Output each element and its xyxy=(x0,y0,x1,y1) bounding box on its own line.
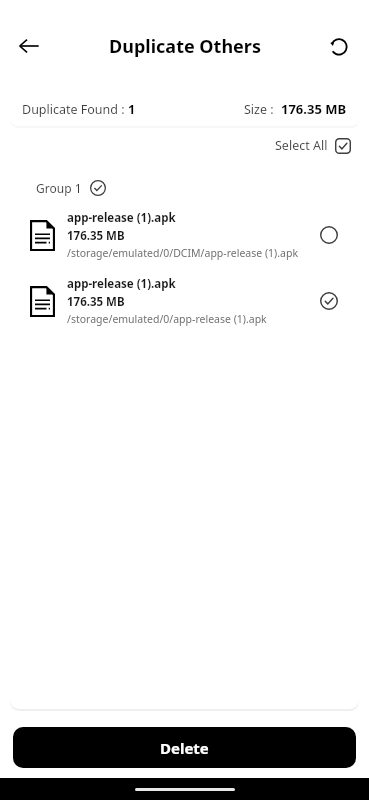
staticText: 176.35 MB xyxy=(67,228,125,244)
button[interactable]: Back xyxy=(6,23,52,69)
staticText: 176.35 MB xyxy=(281,100,347,118)
staticText: Duplicate Others xyxy=(109,34,261,59)
staticText: /storage/emulated/0/app-release (1).apk xyxy=(67,312,267,326)
staticText: app-release (1).apk xyxy=(67,276,176,292)
button[interactable]: Refresh xyxy=(317,24,361,68)
button[interactable]: Not selected xyxy=(315,221,343,249)
staticText: Select All xyxy=(275,137,328,154)
button[interactable]: Delete xyxy=(13,727,356,768)
button[interactable]: Select All xyxy=(271,133,355,158)
staticText: 1 xyxy=(128,101,136,118)
button[interactable]: app-release (1).apk xyxy=(10,202,359,268)
staticText: /storage/emulated/0/DCIM/app-release (1)… xyxy=(67,246,298,260)
staticText: 176.35 MB xyxy=(67,294,125,310)
staticText: Size : xyxy=(244,101,281,118)
button[interactable]: Selected xyxy=(315,287,343,315)
staticText: Delete xyxy=(160,738,209,758)
staticText: Group 1 xyxy=(36,180,82,196)
button[interactable]: Group 1 xyxy=(34,178,108,198)
staticText: app-release (1).apk xyxy=(67,210,176,226)
button[interactable]: app-release (1).apk xyxy=(10,268,359,334)
staticText: Duplicate Found : xyxy=(22,101,128,118)
